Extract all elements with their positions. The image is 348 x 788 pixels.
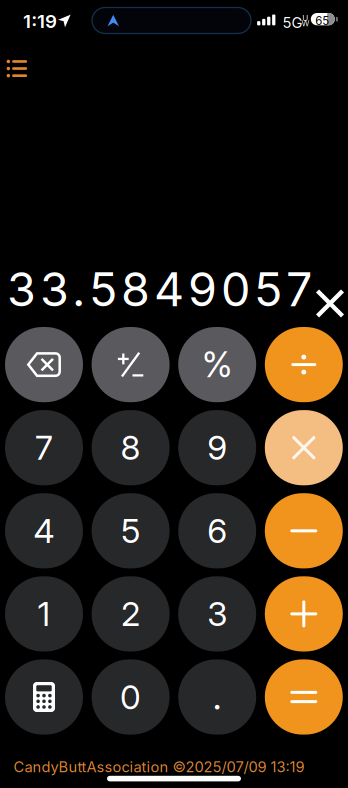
staticText: 65 — [315, 14, 329, 28]
button[interactable]: Multiply — [265, 410, 343, 485]
staticText: 3 — [207, 594, 227, 634]
button[interactable]: 3 — [178, 576, 256, 651]
button[interactable]: 2 — [92, 576, 170, 651]
staticText: 1:19 — [23, 10, 57, 33]
button[interactable]: 4 — [5, 493, 83, 568]
staticText: CandyButtAssociation ©2025/07/09 13:19 — [13, 758, 304, 776]
button[interactable]: 1 — [5, 576, 83, 651]
staticText: 7 — [35, 427, 53, 468]
staticText: 4 — [33, 511, 54, 551]
staticText: % — [202, 344, 233, 385]
button[interactable]: 5 — [92, 493, 170, 568]
button[interactable]: History — [0, 46, 44, 90]
button[interactable]: Equals — [265, 659, 343, 735]
staticText: W — [302, 18, 310, 28]
staticText: . — [213, 673, 222, 719]
button[interactable]: 6 — [178, 493, 256, 568]
button[interactable]: % — [178, 327, 256, 402]
button[interactable]: 8 — [92, 410, 170, 485]
button[interactable]: 0 — [92, 659, 170, 735]
button[interactable]: Add — [265, 576, 343, 651]
staticText: 33.5849057 — [7, 261, 312, 317]
button[interactable]: . — [178, 659, 256, 735]
button[interactable]: Subtract — [265, 493, 343, 568]
staticText: 6 — [207, 511, 227, 551]
button[interactable]: 7 — [5, 410, 83, 485]
button[interactable]: Divide — [265, 327, 343, 402]
staticText: 0 — [120, 677, 141, 717]
button[interactable]: Calculator — [5, 659, 83, 735]
staticText: 1 — [37, 594, 50, 634]
staticText: 5 — [121, 511, 140, 551]
staticText: 2 — [121, 594, 140, 634]
staticText: 9 — [207, 427, 227, 468]
button[interactable]: Plus minus — [92, 327, 170, 402]
button[interactable]: 9 — [178, 410, 256, 485]
staticText: 8 — [121, 427, 141, 468]
staticText: U — [302, 13, 308, 23]
button[interactable]: Delete — [5, 327, 83, 402]
staticText: 5G — [283, 14, 303, 31]
